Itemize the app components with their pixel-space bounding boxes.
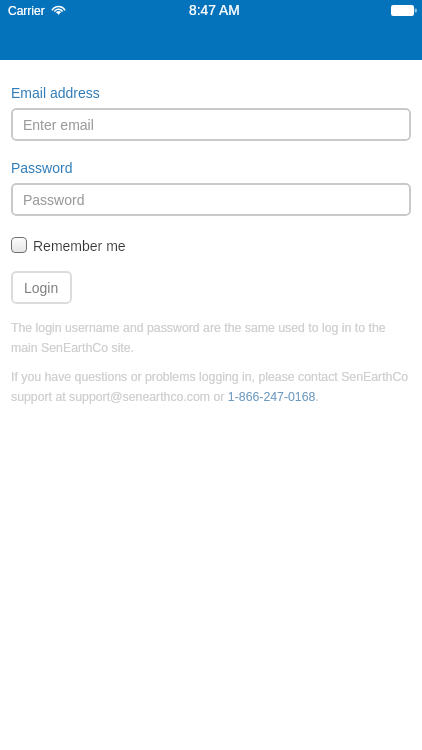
staticText: The login username and password are the … xyxy=(11,321,411,354)
button[interactable]: Password xyxy=(11,183,411,216)
staticText: Password xyxy=(11,160,73,176)
staticText: 8:47 AM xyxy=(189,3,240,18)
staticText: Login xyxy=(24,280,59,296)
button[interactable]: Enter email xyxy=(11,108,411,141)
staticText: Password xyxy=(23,192,85,208)
button[interactable]: Remember me xyxy=(11,237,126,253)
staticText: Carrier xyxy=(8,4,45,17)
button[interactable]: Call 1-866-247-0168 xyxy=(228,389,316,403)
staticText: Enter email xyxy=(23,117,94,133)
staticText: Remember me xyxy=(33,238,126,254)
staticText: If you have questions or problems loggin… xyxy=(11,370,411,403)
button[interactable]: Login xyxy=(11,271,72,304)
staticText: Email address xyxy=(11,85,100,101)
